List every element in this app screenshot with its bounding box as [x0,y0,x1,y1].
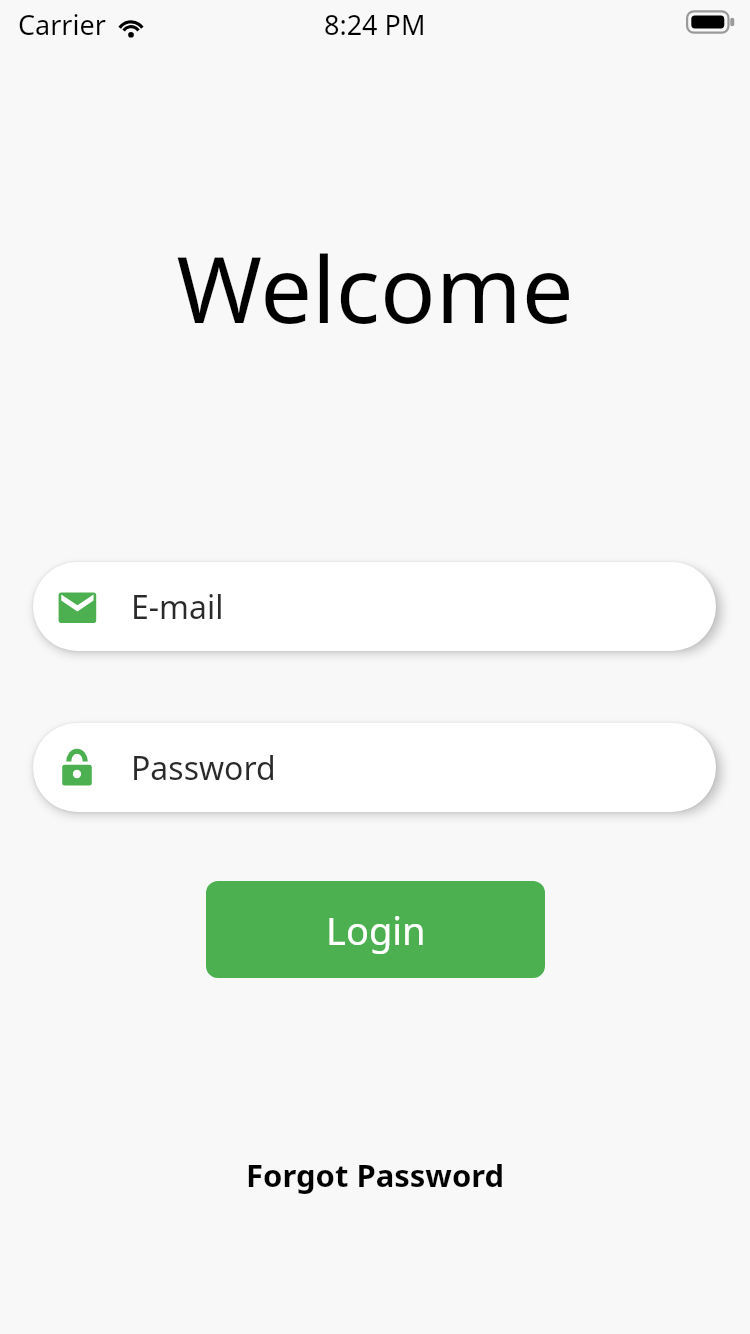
staticText: Welcome [0,225,750,350]
other: Password [57,748,97,788]
button[interactable]: Forgot Password [234,1148,517,1202]
button[interactable]: Login [206,881,545,978]
staticText: Forgot Password [246,1154,505,1196]
staticText: Carrier [18,6,106,43]
other: E-mail [57,587,97,627]
staticText: Password [131,746,276,790]
button[interactable]: E-mail [33,562,716,651]
staticText: 8:24 PM [324,6,426,43]
button[interactable]: Password [33,723,716,812]
staticText: E-mail [131,585,224,629]
staticText: Login [326,904,426,956]
